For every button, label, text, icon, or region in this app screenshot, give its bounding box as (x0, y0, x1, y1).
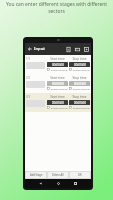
button[interactable]: Back (26, 45, 34, 53)
staticText: Stop time (69, 95, 90, 99)
staticText: 00:00:00 (74, 101, 86, 105)
button[interactable]: Enable interval (69, 106, 90, 109)
staticText: Enable interval (51, 106, 68, 109)
staticText: Enable interval (73, 68, 90, 71)
staticText: 00:00:00 (52, 82, 64, 86)
button[interactable]: Enable interval (69, 87, 90, 90)
staticText: Input (34, 46, 45, 52)
staticText: Start time (47, 57, 68, 61)
button[interactable]: Enable interval (47, 87, 68, 90)
button[interactable]: Enable interval (47, 68, 68, 71)
staticText: Enable interval (73, 87, 90, 90)
button[interactable]: 00:00:00 (69, 81, 90, 86)
button[interactable]: Enable interval (47, 106, 68, 109)
button[interactable]: 00:00:00 (47, 100, 68, 105)
staticText: Stop time (69, 76, 90, 80)
staticText: Stop time (69, 57, 90, 61)
button[interactable]: Delete All (48, 172, 68, 178)
staticText: 00:00:00 (52, 101, 64, 105)
button[interactable]: 00:00:00 (47, 81, 68, 86)
staticText: 00:00:00 (74, 82, 86, 86)
staticText: Start time (47, 95, 68, 99)
button[interactable]: Save (64, 45, 73, 54)
staticText: Start time (47, 76, 68, 80)
staticText: Enable interval (51, 87, 68, 90)
button[interactable]: 00:00:00 (47, 62, 68, 67)
button[interactable]: 00:00:00 (69, 62, 90, 67)
button[interactable]: Enable interval (69, 68, 90, 71)
staticText: Enable interval (51, 68, 68, 71)
button[interactable]: 00:00:00 (69, 100, 90, 105)
staticText: 3/3 (26, 95, 30, 99)
button[interactable]: Recents (74, 182, 77, 185)
button[interactable]: Back (39, 182, 42, 185)
staticText: Enable interval (73, 106, 90, 109)
button[interactable]: Open (73, 45, 82, 54)
staticText: 1/3 (26, 57, 30, 61)
button[interactable]: OK (70, 172, 90, 178)
staticText: You can enter different stages with diff… (4, 1, 109, 14)
staticText: Delete All (52, 173, 64, 177)
staticText: 00:00:00 (52, 63, 64, 67)
button[interactable]: Add (82, 45, 91, 54)
staticText: 2/3 (26, 76, 30, 80)
staticText: OK (78, 173, 82, 177)
button[interactable]: Add Stage (26, 172, 46, 178)
staticText: 00:00:00 (74, 63, 86, 67)
staticText: Add Stage (30, 173, 43, 177)
button[interactable]: Home (57, 182, 60, 185)
